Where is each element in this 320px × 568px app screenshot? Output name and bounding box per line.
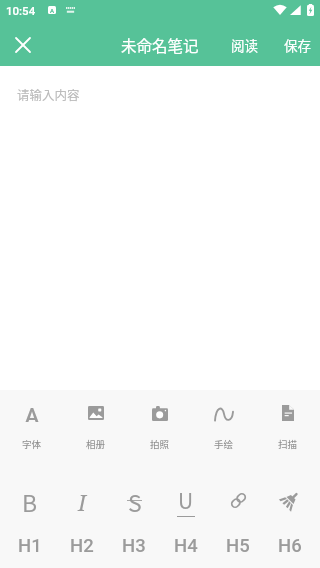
- button[interactable]: Heading 3: [108, 524, 160, 568]
- button[interactable]: 手绘: [192, 390, 256, 477]
- button[interactable]: Bold: [4, 477, 56, 524]
- staticText: 拍照: [150, 437, 170, 451]
- button[interactable]: 拍照: [128, 390, 192, 477]
- button[interactable]: 阅读: [221, 24, 271, 66]
- staticText: B: [22, 485, 38, 518]
- button[interactable]: Strikethrough: [108, 477, 160, 524]
- staticText: S: [128, 485, 142, 518]
- button[interactable]: 扫描: [256, 390, 320, 477]
- staticText: 扫描: [278, 437, 298, 451]
- button[interactable]: Italic: [56, 477, 108, 524]
- staticText: 10:54: [6, 4, 36, 17]
- staticText: A: [50, 7, 55, 14]
- button[interactable]: 保存: [271, 24, 320, 66]
- staticText: A: [25, 404, 39, 422]
- staticText: 保存: [284, 35, 311, 55]
- button[interactable]: Close: [0, 24, 45, 66]
- staticText: H4: [174, 535, 198, 557]
- staticText: 相册: [86, 437, 106, 451]
- staticText: H6: [278, 535, 302, 557]
- staticText: H5: [226, 535, 250, 557]
- staticText: 请输入内容: [17, 85, 80, 103]
- button[interactable]: Clear formatting: [264, 477, 316, 524]
- button[interactable]: Underline: [160, 477, 212, 524]
- button[interactable]: Heading 4: [160, 524, 212, 568]
- staticText: I: [78, 487, 87, 517]
- button[interactable]: Link: [212, 477, 264, 524]
- button[interactable]: Heading 5: [212, 524, 264, 568]
- button[interactable]: Heading 2: [56, 524, 108, 568]
- button[interactable]: Heading 1: [4, 524, 56, 568]
- staticText: 未命名笔记: [121, 34, 199, 56]
- staticText: U: [178, 485, 194, 515]
- staticText: H2: [70, 535, 94, 557]
- staticText: 字体: [22, 437, 42, 451]
- button[interactable]: Heading 6: [264, 524, 316, 568]
- staticText: 手绘: [214, 437, 234, 451]
- button[interactable]: 相册: [64, 390, 128, 477]
- button[interactable]: A: [0, 390, 64, 477]
- staticText: H1: [18, 535, 42, 557]
- staticText: H3: [122, 535, 146, 557]
- staticText: 阅读: [231, 35, 258, 55]
